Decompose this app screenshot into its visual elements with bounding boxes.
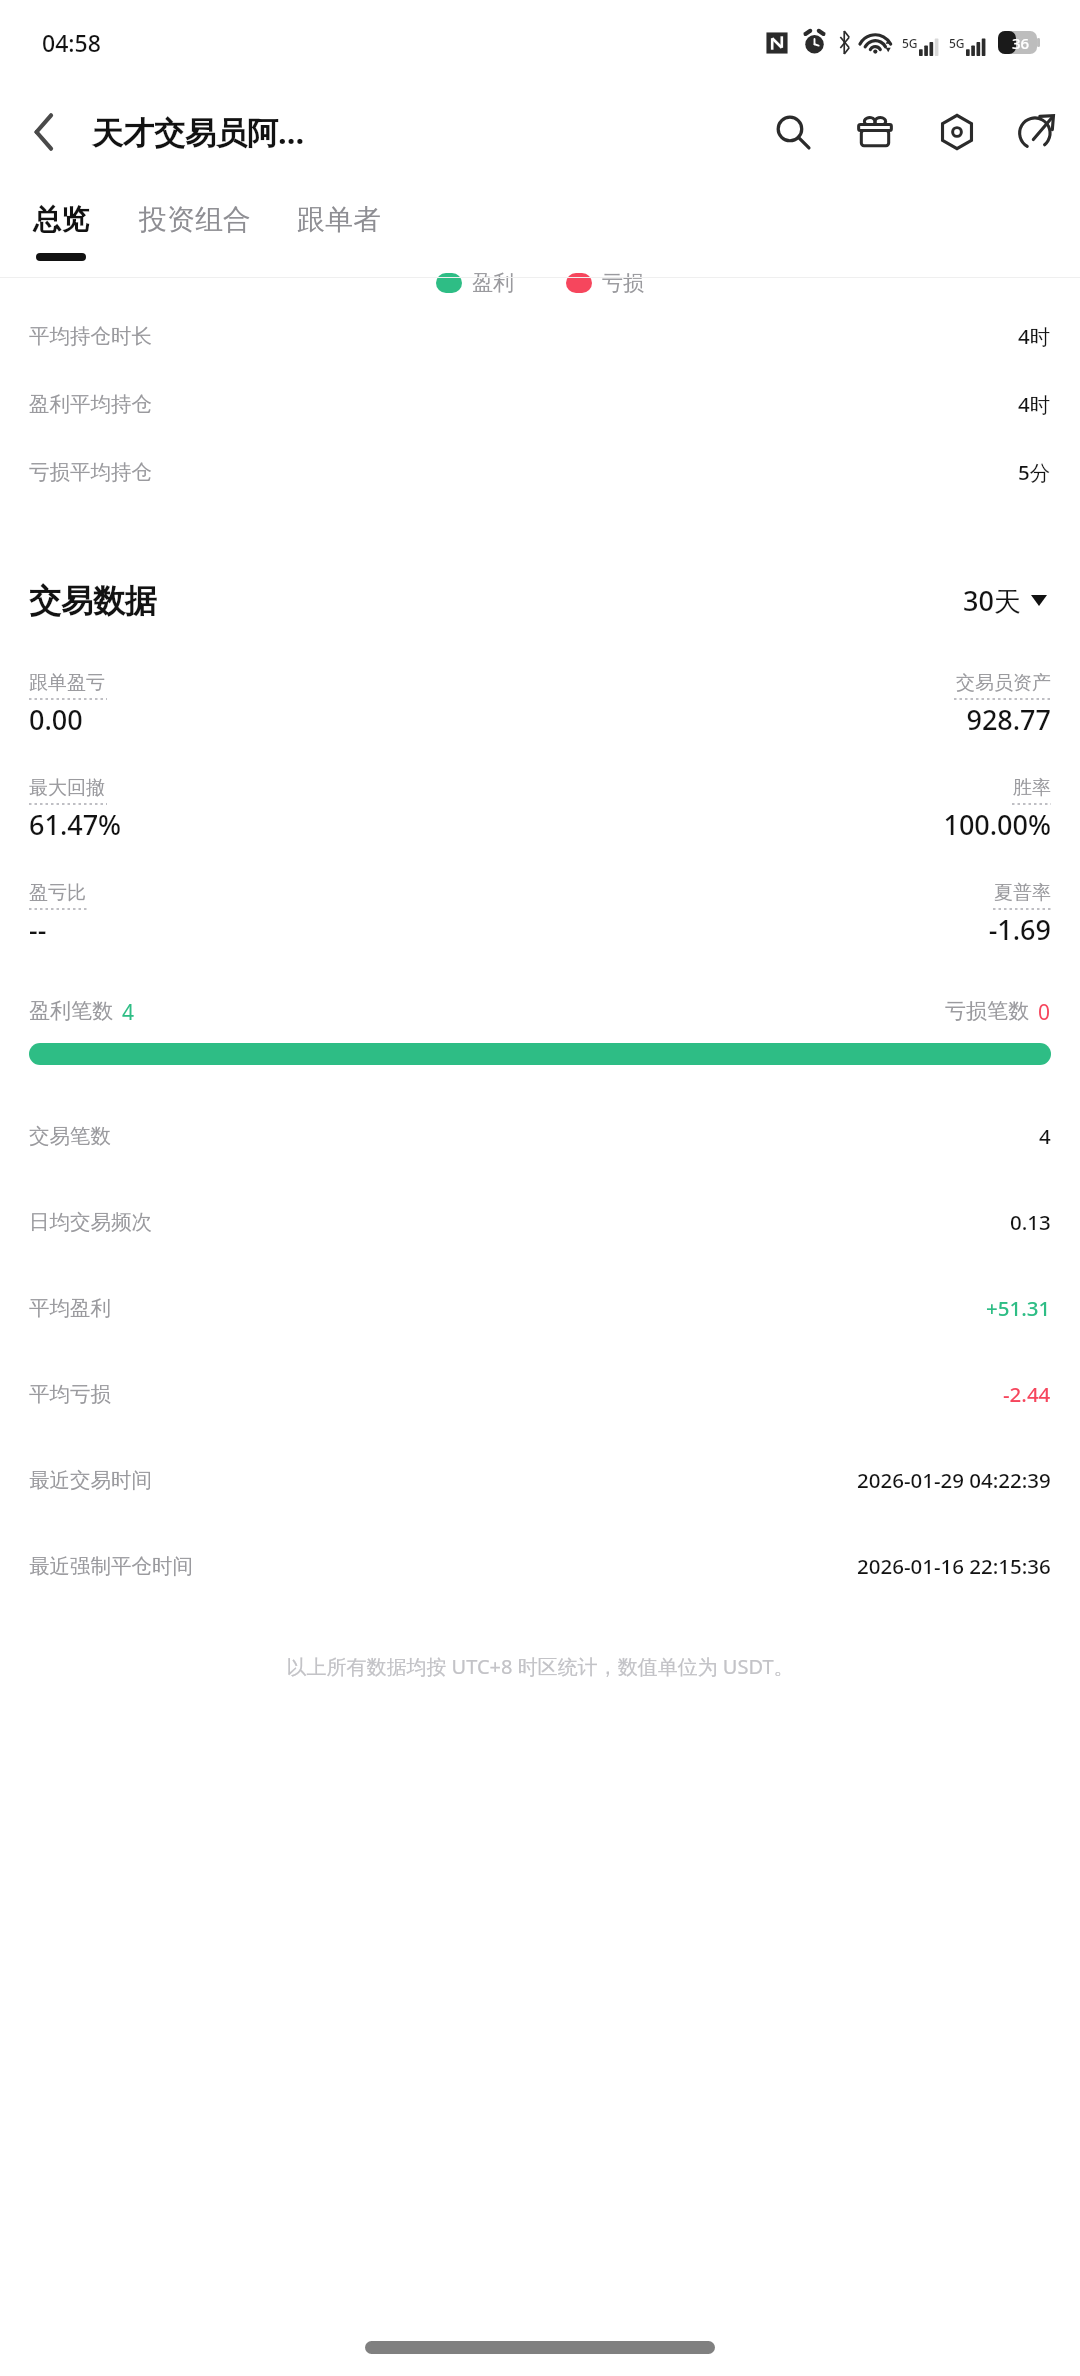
staticText: 日均交易频次 [29, 1209, 152, 1235]
staticText: 亏损 [602, 270, 644, 296]
staticText: 交易员资产 [956, 671, 1051, 695]
button[interactable]: 30天 [959, 578, 1051, 623]
staticText: 亏损平均持仓 [29, 459, 152, 485]
staticText: 总览 [33, 202, 89, 237]
button[interactable]: Search [752, 91, 834, 173]
button[interactable]: 夏普率 [540, 881, 1051, 948]
button[interactable]: 盈利平均持仓 [0, 370, 1080, 438]
button[interactable]: 总览 [29, 180, 93, 261]
button[interactable]: 平均持仓时长 [0, 302, 1080, 370]
staticText: 4 [122, 998, 135, 1027]
staticText: 夏普率 [994, 881, 1051, 905]
staticText: 30天 [963, 582, 1021, 619]
staticText: 最近交易时间 [29, 1467, 152, 1493]
staticText: 4时 [1018, 390, 1051, 418]
button[interactable]: 最近强制平仓时间 [0, 1523, 1080, 1609]
staticText: 5G [902, 35, 918, 51]
staticText: 跟单者 [297, 202, 381, 237]
staticText: 盈亏比 [29, 881, 86, 905]
staticText: 亏损笔数 [945, 998, 1029, 1024]
staticText: 5分 [1018, 458, 1051, 486]
button[interactable]: Share [998, 91, 1074, 173]
button[interactable]: 最近交易时间 [0, 1437, 1080, 1523]
button[interactable]: 平均亏损 [0, 1351, 1080, 1437]
staticText: 0 [1038, 998, 1051, 1027]
staticText: 平均持仓时长 [29, 323, 152, 349]
staticText: 盈利笔数 [29, 998, 113, 1024]
staticText: 跟单盈亏 [29, 671, 105, 695]
staticText: 天才交易员阿... [92, 111, 305, 153]
button[interactable]: Back [0, 88, 88, 176]
button[interactable]: 交易笔数 [0, 1093, 1080, 1179]
staticText: -- [29, 911, 47, 948]
staticText: 36 [1012, 33, 1030, 53]
button[interactable]: Rewards [834, 91, 916, 173]
button[interactable]: 投资组合 [135, 180, 255, 237]
staticText: 928.77 [966, 701, 1051, 738]
staticText: 100.00% [943, 806, 1051, 843]
staticText: 0.13 [1010, 1208, 1051, 1236]
button[interactable]: 盈亏比 [29, 881, 540, 948]
staticText: 0.00 [29, 701, 83, 738]
staticText: 04:58 [42, 27, 101, 58]
button[interactable]: 亏损平均持仓 [0, 438, 1080, 506]
staticText: 最近强制平仓时间 [29, 1553, 193, 1579]
staticText: +51.31 [986, 1294, 1051, 1322]
staticText: -2.44 [1003, 1380, 1051, 1408]
staticText: 4时 [1018, 322, 1051, 350]
staticText: 4 [1039, 1122, 1051, 1150]
staticText: 2026-01-29 04:22:39 [857, 1466, 1051, 1494]
staticText: 交易笔数 [29, 1123, 111, 1149]
staticText: 61.47% [29, 806, 122, 843]
staticText: 平均盈利 [29, 1295, 111, 1321]
button[interactable]: 交易员资产 [540, 671, 1051, 738]
button[interactable]: 日均交易频次 [0, 1179, 1080, 1265]
staticText: 2026-01-16 22:15:36 [857, 1552, 1051, 1580]
button[interactable]: 跟单者 [293, 180, 385, 237]
staticText: 平均亏损 [29, 1381, 111, 1407]
staticText: 5G [949, 35, 965, 51]
staticText: 交易数据 [29, 581, 157, 621]
staticText: -1.69 [988, 911, 1051, 948]
button[interactable]: 平均盈利 [0, 1265, 1080, 1351]
button[interactable]: 胜率 [540, 776, 1051, 843]
staticText: 投资组合 [139, 202, 251, 237]
button[interactable]: Settings [916, 91, 998, 173]
button[interactable]: 跟单盈亏 [29, 671, 540, 738]
staticText: 盈利平均持仓 [29, 391, 152, 417]
staticText: 胜率 [1013, 776, 1051, 800]
staticText: 盈利 [472, 270, 514, 296]
staticText: 最大回撤 [29, 776, 105, 800]
button[interactable]: 最大回撤 [29, 776, 540, 843]
staticText: 以上所有数据均按 UTC+8 时区统计，数值单位为 USDT。 [286, 1653, 794, 1680]
